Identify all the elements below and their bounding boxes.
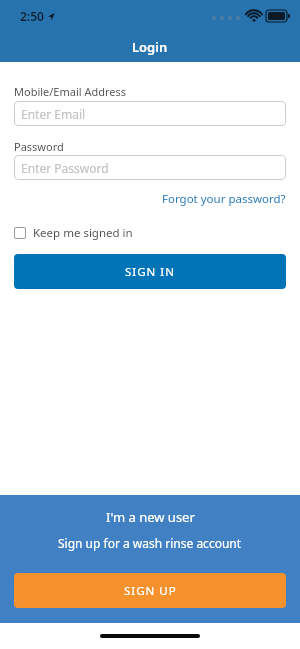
staticText: SIGN IN bbox=[125, 264, 175, 280]
staticText: Password bbox=[14, 139, 64, 154]
staticText: Login bbox=[132, 38, 168, 56]
button[interactable]: SIGN IN bbox=[14, 254, 286, 289]
staticText: 2:50 bbox=[20, 8, 44, 24]
staticText: Enter Email bbox=[21, 106, 86, 122]
staticText: I'm a new user bbox=[106, 508, 195, 526]
button[interactable]: SIGN UP bbox=[14, 573, 286, 608]
button[interactable]: Enter Password bbox=[14, 155, 286, 180]
button[interactable]: Keep me signed in bbox=[14, 225, 133, 241]
staticText: Sign up for a wash rinse account bbox=[58, 535, 242, 551]
staticText: Mobile/Email Address bbox=[14, 84, 127, 99]
button[interactable]: Enter Email bbox=[14, 101, 286, 126]
staticText: Keep me signed in bbox=[33, 225, 133, 241]
staticText: SIGN UP bbox=[124, 583, 177, 599]
staticText: Enter Password bbox=[21, 160, 109, 176]
button[interactable]: Forgot your password? bbox=[162, 191, 286, 207]
